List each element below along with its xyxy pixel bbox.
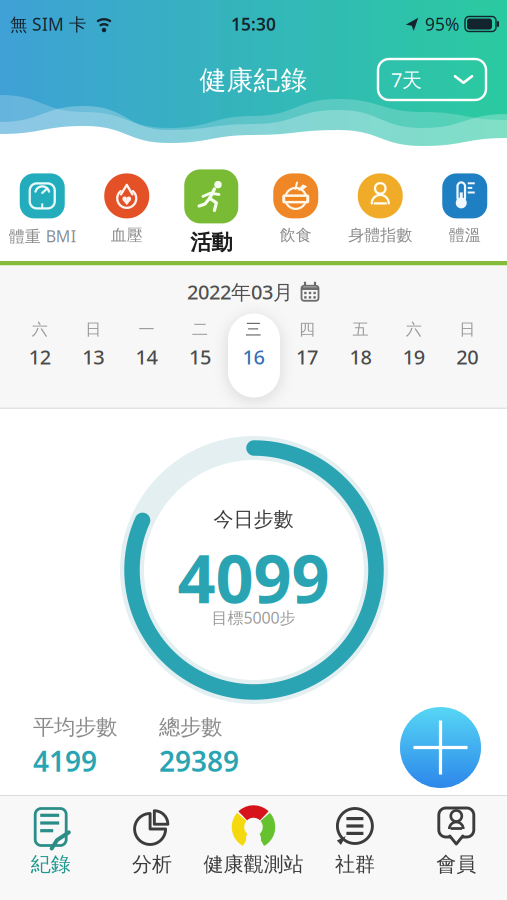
staticText: 4199 [33,742,97,779]
staticText: 六 [32,319,48,339]
button[interactable]: 體重 BMI [9,169,76,247]
button[interactable]: 活動 [184,169,238,256]
button[interactable]: 19 [387,343,440,370]
staticText: 今日步數 [213,507,293,532]
button[interactable]: 2022年03月 [187,278,320,305]
staticText: 19 [403,343,425,370]
staticText: 2022年03月 [187,278,293,305]
staticText: 日 [459,319,475,339]
staticText: 日 [85,319,101,339]
staticText: 二 [192,319,208,339]
button[interactable]: 20 [441,343,494,370]
staticText: 一 [139,319,155,339]
staticText: 16 [242,343,264,370]
button[interactable]: 血壓 [104,169,149,245]
staticText: 平均步數 [33,714,117,740]
button[interactable]: 飲食 [273,169,318,245]
staticText: 體重 BMI [9,225,76,247]
button[interactable]: 分析 [101,806,203,877]
button[interactable]: 13 [66,343,120,370]
staticText: 血壓 [111,225,143,245]
button[interactable]: 18 [334,343,387,370]
staticText: 12 [29,343,51,370]
staticText: 7天 [391,66,422,93]
button[interactable]: 會員 [406,806,507,877]
button[interactable]: 14 [120,343,173,370]
staticText: 95% [425,12,459,35]
staticText: 四 [299,319,315,339]
staticText: 三 [245,319,261,339]
button[interactable]: 體溫 [442,169,487,245]
button[interactable]: 新增 [400,707,481,788]
staticText: 六 [406,319,422,339]
staticText: 社群 [335,852,375,877]
button[interactable]: 健康觀測站 [203,806,304,877]
button[interactable]: 17 [280,343,334,370]
staticText: 13 [82,343,104,370]
staticText: 20 [456,343,478,370]
staticText: 活動 [190,229,232,256]
staticText: 身體指數 [348,225,412,245]
staticText: 體溫 [449,225,481,245]
staticText: 會員 [436,852,476,877]
button[interactable]: 7天 [378,59,486,100]
staticText: 紀錄 [31,852,71,877]
button[interactable]: 12 [13,343,66,370]
staticText: 無 SIM 卡 [10,12,86,35]
staticText: 目標5000步 [211,607,295,628]
staticText: 健康紀錄 [199,64,307,97]
staticText: 總步數 [159,714,222,740]
button[interactable]: 身體指數 [348,169,412,245]
staticText: 分析 [132,852,172,877]
staticText: 五 [352,319,368,339]
button[interactable]: 16 [227,343,280,370]
staticText: 15 [189,343,211,370]
button[interactable]: 紀錄 [0,806,101,877]
staticText: 14 [136,343,158,370]
staticText: 29389 [159,742,239,779]
staticText: 4099 [177,533,329,621]
staticText: 健康觀測站 [203,852,303,877]
staticText: 飲食 [280,225,312,245]
staticText: 18 [349,343,371,370]
staticText: 17 [296,343,318,370]
button[interactable]: 15 [173,343,227,370]
staticText: 15:30 [231,12,276,35]
button[interactable]: 社群 [304,806,406,877]
